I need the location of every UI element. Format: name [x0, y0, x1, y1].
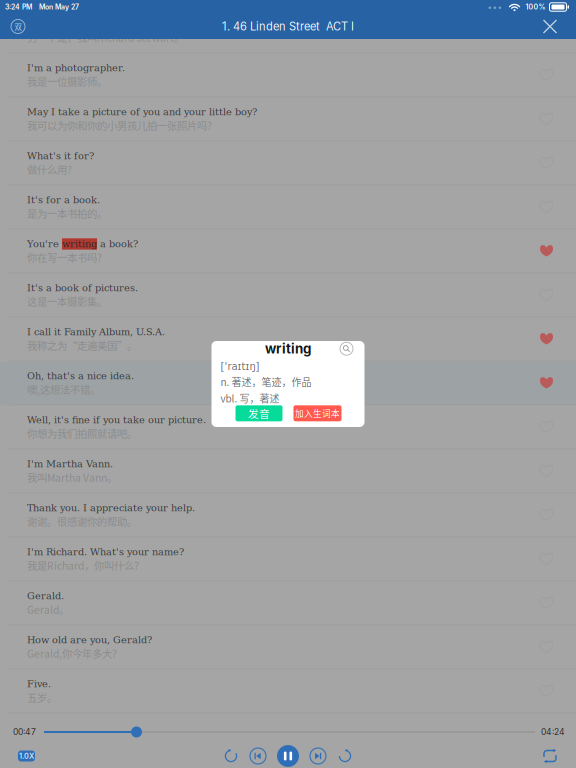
button[interactable]: May I take a picture of you and your lit… — [0, 97, 576, 141]
staticText: 我叫Martha Vann。 — [27, 470, 117, 485]
staticText: 五岁。 — [27, 690, 57, 705]
button[interactable]: And where do you live, Gerald? — [0, 713, 576, 757]
button[interactable]: Five. — [0, 669, 576, 713]
staticText: 你住在哪儿，Gerald? — [27, 734, 124, 749]
staticText: I'm Richard. What's your name? — [27, 546, 184, 558]
staticText: writing — [62, 238, 97, 250]
button[interactable]: Playback speed — [18, 750, 35, 761]
staticText: 你想为我们拍照就请吧。 — [27, 426, 137, 441]
button[interactable]: Bilingual mode — [5, 14, 31, 39]
staticText: May I take a picture of you and your lit… — [27, 106, 257, 118]
staticText: Mon May 27 — [39, 3, 79, 11]
button[interactable]: It's a book of pictures. — [0, 273, 576, 317]
button[interactable]: Remove favourite — [532, 236, 562, 266]
button[interactable]: Remove favourite — [532, 368, 562, 398]
staticText: Gerald。 — [27, 602, 69, 617]
staticText: What's it for? — [27, 150, 94, 162]
staticText: Thank you. I appreciate your help. — [27, 502, 195, 514]
staticText: It's a book of pictures. — [27, 282, 138, 294]
button[interactable]: 加入生词本 — [293, 405, 341, 421]
staticText: 我是Richard，你叫什么? — [27, 558, 139, 573]
staticText: I call it Family Album, U.S.A. — [27, 326, 165, 338]
staticText: 加入生词本 — [295, 407, 340, 419]
button[interactable]: Oh, that's a nice idea. — [0, 361, 576, 405]
button[interactable]: Thank you. I appreciate your help. — [0, 493, 576, 537]
staticText: I'm Martha Vann. — [27, 458, 113, 470]
staticText: n. 著述，笔迹，作品 — [220, 374, 311, 389]
staticText: 双 — [14, 21, 21, 32]
staticText: Gerald. — [27, 590, 64, 602]
staticText: 1. 46 Linden Street ACT I — [222, 20, 354, 33]
button[interactable]: Previous — [249, 747, 267, 765]
button[interactable]: I call it Family Album, U.S.A. — [0, 317, 576, 361]
button[interactable]: I'm Martha Vann. — [0, 449, 576, 493]
button[interactable]: Well, it's fine if you take our picture. — [0, 405, 576, 449]
staticText: Five. — [27, 678, 51, 690]
staticText: 我称之为“走遍美国”。 — [27, 338, 137, 353]
button[interactable]: I'm a photographer. — [0, 53, 576, 97]
staticText: 这是一本摄影集。 — [27, 294, 107, 309]
staticText: 我可以为你和你的小男孩儿拍一张照片吗? — [27, 118, 212, 133]
staticText: 发音 — [248, 406, 270, 421]
staticText: 做什么用? — [27, 162, 72, 177]
staticText: writing — [265, 341, 311, 357]
staticText: Gerald,你今年多大? — [27, 646, 117, 661]
staticText: ['raɪtɪŋ] — [220, 361, 259, 372]
staticText: And where do you live, Gerald? — [27, 722, 180, 734]
button[interactable]: Add favourite — [532, 720, 562, 750]
button[interactable]: Gerald. — [0, 581, 576, 625]
staticText: 1.0X — [19, 752, 34, 760]
button[interactable]: I'm Richard. What's your name? — [0, 537, 576, 581]
button[interactable]: You're — [0, 229, 576, 273]
staticText: 另一个是，我叫Richard Stewart。 — [27, 30, 184, 45]
staticText: Oh, that's a nice idea. — [27, 370, 134, 382]
staticText: 你在写一本书吗? — [27, 250, 102, 265]
staticText: How old are you, Gerald? — [27, 634, 152, 646]
staticText: vbl. 写，著述 — [220, 391, 279, 405]
button[interactable]: Pause — [277, 745, 299, 767]
button[interactable]: Look up — [337, 340, 355, 358]
button[interactable]: How old are you, Gerald? — [0, 625, 576, 669]
staticText: a book? — [97, 238, 138, 250]
staticText: 100% — [525, 3, 545, 11]
staticText: 3:24 PM — [5, 3, 32, 11]
staticText: It's for a book. — [27, 194, 100, 206]
button[interactable]: Add favourite — [532, 16, 562, 46]
staticText: 谢谢。很感谢你的帮助。 — [27, 514, 137, 529]
staticText: I'm a photographer. — [27, 62, 125, 74]
button[interactable]: 发音 — [235, 405, 282, 421]
button[interactable]: Repeat — [542, 749, 558, 763]
staticText: 是为一本书拍的。 — [27, 206, 107, 221]
button[interactable]: I'm Richard Stewart. — [0, 9, 576, 53]
staticText: 00:47 — [13, 727, 36, 737]
staticText: Well, it's fine if you take our picture. — [27, 414, 206, 426]
button[interactable]: Remove favourite — [532, 324, 562, 354]
button[interactable]: Next — [309, 747, 327, 765]
staticText: ••• — [487, 2, 502, 12]
button[interactable]: Close — [530, 14, 570, 39]
staticText: 04:24 — [541, 727, 565, 737]
button[interactable]: What's it for? — [0, 141, 576, 185]
button[interactable]: It's for a book. — [0, 185, 576, 229]
button[interactable]: Forward 5 seconds — [337, 748, 353, 764]
staticText: 我是一位摄影师。 — [27, 74, 107, 89]
button[interactable]: Rewind 5 seconds — [223, 748, 239, 764]
staticText: 噢,这想法不错。 — [27, 382, 100, 397]
staticText: You're — [27, 238, 62, 250]
